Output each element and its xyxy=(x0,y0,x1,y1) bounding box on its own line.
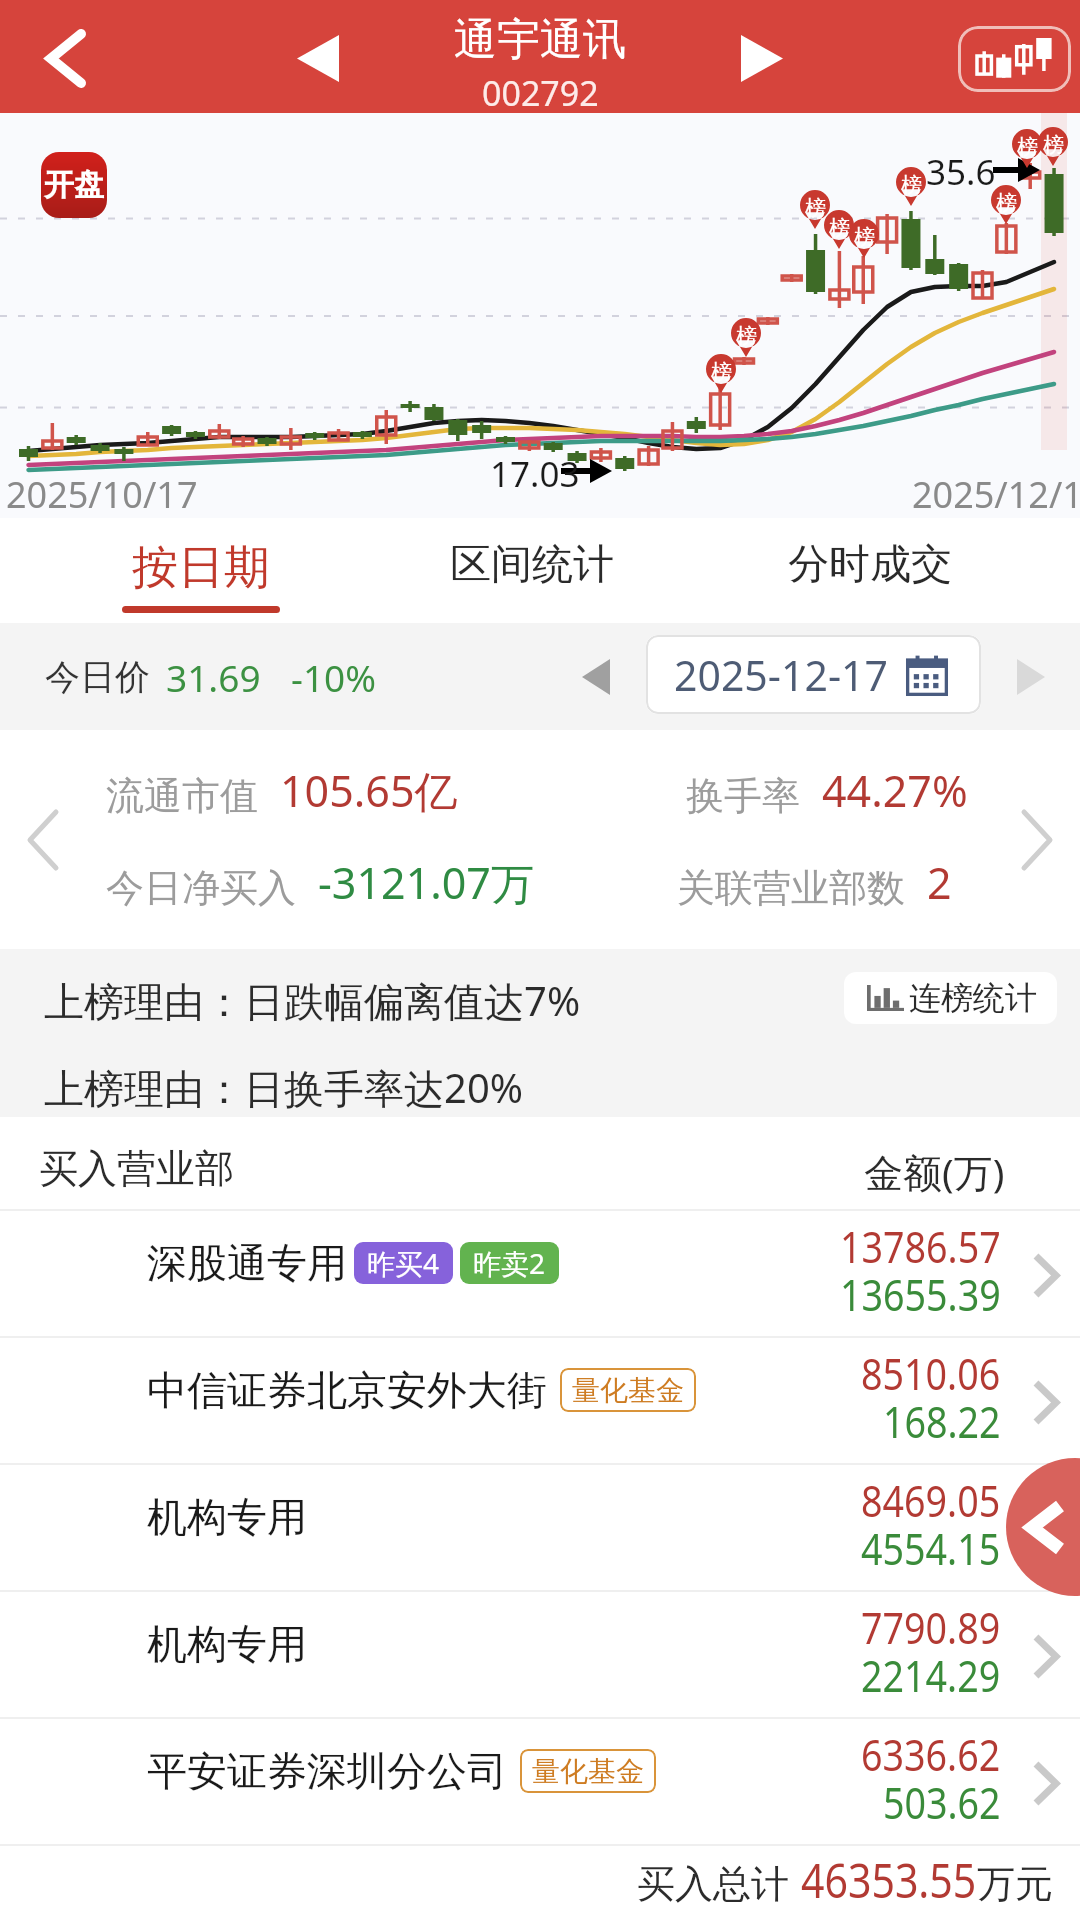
button[interactable]: Next stock xyxy=(712,8,812,108)
staticText: 换手率 xyxy=(686,772,800,820)
staticText: 榜 xyxy=(736,323,757,349)
button[interactable]: 分时成交 xyxy=(710,518,1030,623)
staticText: 昨卖2 xyxy=(473,1244,546,1282)
staticText: 流通市值 xyxy=(106,772,258,820)
staticText: 今日价 xyxy=(45,655,150,699)
button[interactable]: 中信证券北京安外大街 xyxy=(0,1338,1080,1463)
staticText: 8510.06 xyxy=(861,1344,1001,1403)
staticText: 13786.57 xyxy=(840,1217,1001,1276)
staticText: -10% xyxy=(291,652,376,702)
staticText: 机构专用 xyxy=(147,1619,307,1669)
button[interactable]: 连榜统计 xyxy=(844,972,1057,1024)
staticText: 按日期 xyxy=(132,539,270,597)
staticText: 榜 xyxy=(901,172,922,198)
staticText: 46353.55 xyxy=(801,1847,977,1912)
button[interactable]: 机构专用 xyxy=(0,1592,1080,1717)
button[interactable]: 按日期 xyxy=(21,518,381,623)
button[interactable]: 2025-12-17 xyxy=(646,635,981,714)
staticText: 量化基金 xyxy=(572,1373,684,1408)
staticText: 中信证券北京安外大街 xyxy=(147,1365,547,1415)
staticText: 7790.89 xyxy=(861,1598,1001,1657)
staticText: 13655.39 xyxy=(840,1265,1001,1324)
staticText: 通宇通讯 xyxy=(454,13,626,67)
staticText: 榜 xyxy=(829,215,850,241)
staticText: 连榜统计 xyxy=(909,978,1037,1018)
button[interactable]: 机构专用 xyxy=(0,1465,1080,1590)
staticText: 17.03 xyxy=(490,450,580,498)
staticText: 平安证券深圳分公司 xyxy=(147,1746,507,1796)
staticText: 002792 xyxy=(482,70,599,116)
button[interactable]: 深股通专用 xyxy=(0,1211,1080,1336)
staticText: 今日净买入 xyxy=(106,864,296,912)
staticText: 关联营业部数 xyxy=(677,864,905,912)
staticText: -3121.07万 xyxy=(318,853,534,912)
staticText: 区间统计 xyxy=(450,539,614,591)
button[interactable]: K-line chart xyxy=(958,26,1071,92)
button[interactable]: Previous page xyxy=(1006,1458,1080,1596)
staticText: 2214.29 xyxy=(861,1646,1001,1705)
staticText: 2 xyxy=(927,853,952,912)
staticText: 深股通专用 xyxy=(147,1238,347,1288)
staticText: 分时成交 xyxy=(788,539,952,591)
staticText: 6336.62 xyxy=(861,1725,1001,1784)
staticText: 开盘 xyxy=(44,166,104,204)
staticText: 上榜理由：日跌幅偏离值达7% xyxy=(44,973,581,1028)
button[interactable]: Back xyxy=(16,8,116,108)
staticText: 买入总计 xyxy=(637,1860,789,1908)
staticText: 量化基金 xyxy=(532,1754,644,1789)
staticText: 榜 xyxy=(996,190,1017,216)
staticText: 榜 xyxy=(1017,134,1038,160)
staticText: 4554.15 xyxy=(861,1519,1001,1578)
staticText: 2025-12-17 xyxy=(674,647,889,703)
staticText: 44.27% xyxy=(822,761,968,820)
staticText: 金额(万) xyxy=(864,1145,1005,1198)
button[interactable]: 区间统计 xyxy=(372,518,692,623)
staticText: 万元 xyxy=(977,1860,1053,1908)
staticText: 榜 xyxy=(805,195,826,221)
staticText: 31.69 xyxy=(166,652,261,702)
staticText: 榜 xyxy=(854,224,875,250)
staticText: 35.6 xyxy=(926,148,996,196)
staticText: 上榜理由：日换手率达20% xyxy=(44,1060,523,1115)
staticText: 168.22 xyxy=(883,1392,1001,1451)
staticText: 机构专用 xyxy=(147,1492,307,1542)
staticText: 榜 xyxy=(1043,132,1064,158)
button[interactable]: Previous day xyxy=(556,637,636,717)
staticText: 昨买4 xyxy=(367,1244,440,1282)
button[interactable]: Previous stock xyxy=(268,8,368,108)
staticText: 2025/10/17 xyxy=(6,470,198,519)
staticText: 8469.05 xyxy=(861,1471,1001,1530)
staticText: 榜 xyxy=(711,359,732,385)
staticText: 2025/12/17 xyxy=(912,470,1080,519)
staticText: 503.62 xyxy=(883,1773,1001,1832)
button[interactable]: Next day xyxy=(991,637,1071,717)
button[interactable]: 平安证券深圳分公司 xyxy=(0,1719,1080,1844)
staticText: 买入营业部 xyxy=(39,1144,234,1193)
staticText: 105.65亿 xyxy=(280,761,458,820)
